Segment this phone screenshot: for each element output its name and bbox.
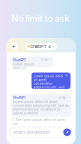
button[interactable]: ChatGPT 4 [25, 43, 57, 50]
staticText: What's your question? [13, 130, 50, 135]
staticText: 1. The lorem ipsum dolor sit amet con [12, 118, 65, 125]
staticText: ChatGPT 4 [30, 44, 51, 49]
staticText: Lorem ipsum dolor sit amet, consectetur … [33, 74, 64, 93]
staticText: Lorem ipsum dolor sit amet, consectetur … [13, 100, 69, 115]
staticText: ChatGPT [13, 58, 26, 62]
staticText: Lorem ipsum dolor sit [13, 63, 34, 70]
button[interactable]: Send [63, 128, 71, 136]
staticText: No limit to ask [11, 13, 69, 24]
button[interactable]: Back [11, 43, 18, 50]
staticText: ChatGPT [13, 96, 26, 99]
staticText: sectetur adipiscing elit sed do eiusmod [12, 126, 61, 133]
